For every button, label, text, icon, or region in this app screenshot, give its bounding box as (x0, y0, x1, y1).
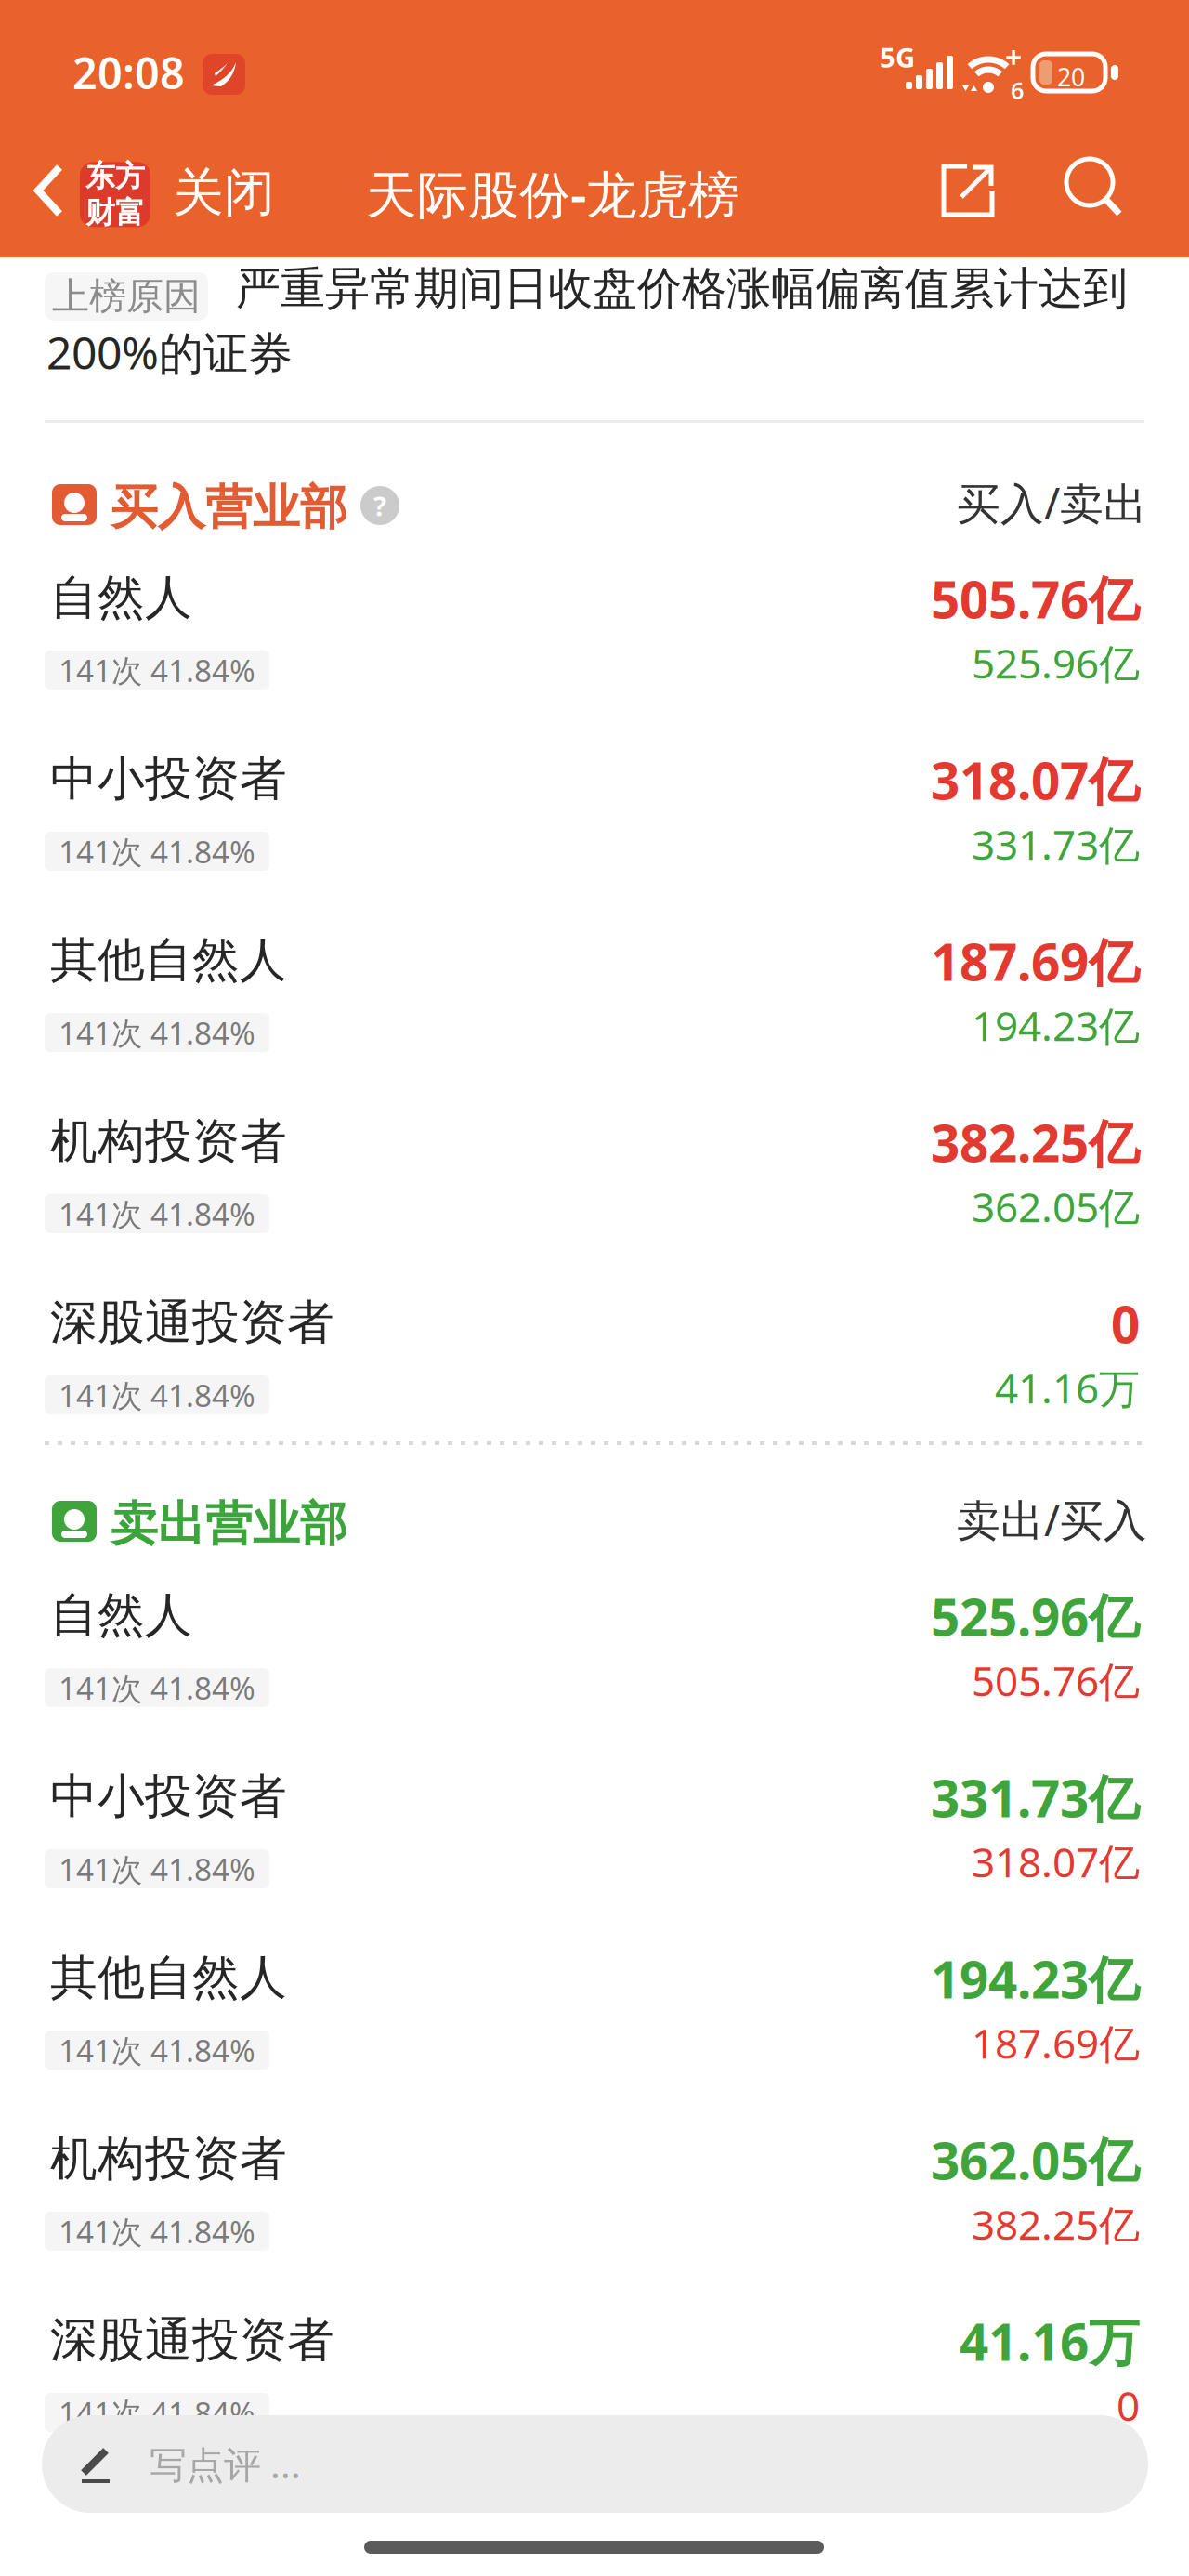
staticText: 5G (880, 39, 915, 75)
staticText: 194.23亿 (931, 1945, 1140, 2012)
staticText: 0 (1111, 1290, 1140, 1357)
staticText: 141次 41.84% (59, 1374, 255, 1415)
staticText: 318.07亿 (931, 746, 1140, 814)
staticText: 财富 (85, 195, 145, 231)
button[interactable]: 写点评 ... (42, 2415, 1148, 2513)
staticText: 141次 41.84% (59, 1012, 255, 1053)
staticText: 自然人 (50, 1586, 192, 1644)
button[interactable]: ? (360, 486, 399, 525)
staticText: 141次 41.84% (59, 831, 255, 872)
staticText: 141次 41.84% (59, 1667, 255, 1708)
staticText: 382.25亿 (931, 1109, 1140, 1176)
staticText: 6 (1011, 74, 1024, 106)
staticText: 自然人 (50, 569, 192, 627)
staticText: 141次 41.84% (59, 2211, 255, 2252)
staticText: 20 (1057, 60, 1085, 93)
button[interactable] (941, 164, 995, 217)
staticText: 卖出/买入 (957, 1491, 1147, 1548)
staticText: 331.73亿 (972, 817, 1140, 871)
staticText: 卖出营业部 (111, 1495, 347, 1553)
staticText: 505.76亿 (931, 565, 1140, 632)
staticText: 362.05亿 (931, 2126, 1140, 2194)
staticText: + (1005, 37, 1022, 77)
staticText: 中小投资者 (50, 1768, 287, 1825)
button[interactable] (35, 165, 63, 217)
staticText: 200%的证券 (46, 322, 293, 382)
staticText: 141次 41.84% (59, 1848, 255, 1889)
staticText: 318.07亿 (972, 1834, 1140, 1889)
staticText: 382.25亿 (972, 2197, 1140, 2251)
staticText: 194.23亿 (972, 998, 1140, 1052)
staticText: 41.16万 (995, 1360, 1140, 1415)
staticText: 其他自然人 (50, 931, 287, 989)
staticText: 141次 41.84% (59, 2392, 255, 2433)
staticText: 关闭 (173, 162, 275, 224)
staticText: 187.69亿 (931, 927, 1140, 995)
staticText: 187.69亿 (972, 2016, 1140, 2070)
staticText: 上榜原因 (52, 274, 201, 319)
staticText: 331.73亿 (931, 1764, 1140, 1831)
staticText: 机构投资者 (50, 1112, 287, 1170)
button[interactable]: 关闭 (173, 162, 275, 224)
staticText: 深股通投资者 (50, 2311, 334, 2369)
staticText: 141次 41.84% (59, 649, 255, 691)
staticText: 525.96亿 (972, 636, 1140, 690)
button[interactable]: 东方 (80, 158, 150, 231)
staticText: 525.96亿 (931, 1583, 1140, 1650)
staticText: 天际股份-龙虎榜 (366, 160, 739, 227)
staticText: 141次 41.84% (59, 2029, 255, 2071)
staticText: 中小投资者 (50, 750, 287, 808)
staticText: 0 (1117, 2378, 1140, 2432)
staticText: 362.05亿 (972, 1179, 1140, 1234)
staticText: 买入营业部 (111, 479, 347, 536)
staticText: 505.76亿 (972, 1653, 1140, 1707)
staticText: 41.16万 (960, 2307, 1140, 2375)
staticText: 20:08 (72, 44, 185, 101)
staticText: 东方 (85, 158, 145, 195)
staticText: 其他自然人 (50, 1949, 287, 2007)
staticText: 机构投资者 (50, 2130, 287, 2188)
staticText: 买入/卖出 (957, 474, 1147, 532)
staticText: 141次 41.84% (59, 1193, 255, 1234)
staticText: 深股通投资者 (50, 1294, 334, 1351)
staticText: 严重异常期间日收盘价格涨幅偏离值累计达到 (236, 261, 1128, 316)
staticText: 写点评 ... (150, 2439, 301, 2489)
staticText: ? (373, 487, 386, 524)
button[interactable] (1066, 159, 1122, 217)
